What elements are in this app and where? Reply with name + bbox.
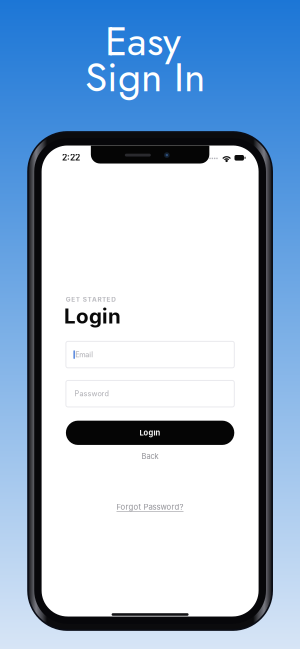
button[interactable]: Forgot Password?: [105, 500, 195, 513]
button[interactable]: Login: [66, 421, 234, 445]
staticText: 2:22: [62, 152, 80, 163]
button[interactable]: Password: [66, 380, 234, 407]
staticText: Forgot Password?: [116, 502, 183, 512]
staticText: Login: [140, 428, 161, 437]
staticText: GET STARTED: [66, 295, 116, 303]
button[interactable]: Email: [66, 341, 234, 368]
button[interactable]: Back: [120, 450, 180, 463]
staticText: Login: [64, 304, 121, 328]
staticText: Back: [141, 452, 158, 461]
staticText: Password: [75, 389, 109, 398]
staticText: Sign In: [85, 48, 205, 106]
staticText: Easy: [105, 12, 181, 70]
staticText: Email: [75, 350, 93, 359]
